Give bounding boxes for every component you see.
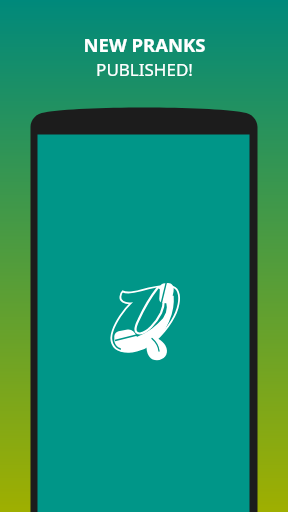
staticText: NEW PRANKS	[83, 32, 206, 57]
staticText: PUBLISHED!	[96, 58, 193, 81]
